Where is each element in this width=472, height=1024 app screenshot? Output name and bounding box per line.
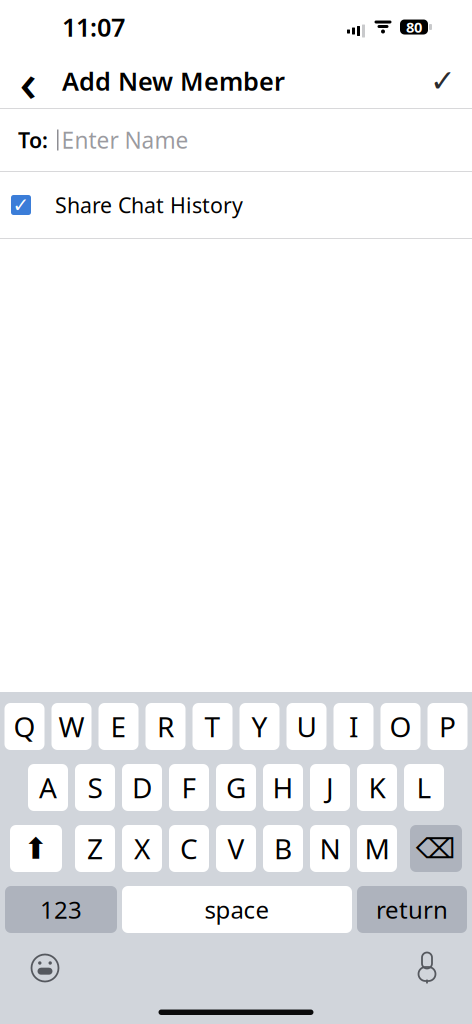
staticText: R: [157, 708, 174, 745]
staticText: N: [319, 830, 340, 867]
button[interactable]: D: [122, 764, 162, 811]
staticText: E: [110, 708, 126, 745]
button[interactable]: U: [286, 703, 326, 750]
button[interactable]: Done: [420, 56, 466, 106]
staticText: S: [87, 769, 102, 806]
staticText: ✓: [430, 64, 456, 98]
staticText: A: [39, 769, 57, 806]
button[interactable]: A: [28, 764, 68, 811]
staticText: 80: [406, 17, 422, 37]
button[interactable]: C: [169, 825, 209, 872]
button[interactable]: K: [357, 764, 397, 811]
button[interactable]: O: [380, 703, 420, 750]
staticText: Z: [87, 830, 103, 867]
staticText: ‹: [19, 46, 36, 116]
button[interactable]: Emoji: [22, 947, 68, 989]
button[interactable]: Y: [239, 703, 279, 750]
staticText: C: [180, 830, 198, 867]
button[interactable]: E: [98, 703, 138, 750]
staticText: 11:07: [62, 10, 125, 44]
staticText: F: [181, 769, 196, 806]
button[interactable]: Dictate: [404, 947, 450, 989]
button[interactable]: L: [404, 764, 444, 811]
staticText: I: [349, 708, 358, 745]
staticText: J: [326, 769, 334, 806]
button[interactable]: Shift: [10, 825, 62, 872]
button[interactable]: G: [216, 764, 256, 811]
staticText: ⌫: [416, 833, 456, 864]
staticText: ⬆: [23, 832, 48, 865]
staticText: Enter Name: [61, 125, 188, 155]
button[interactable]: Back: [8, 56, 48, 106]
staticText: P: [439, 708, 456, 745]
button[interactable]: V: [216, 825, 256, 872]
button[interactable]: N: [310, 825, 350, 872]
staticText: M: [364, 830, 389, 867]
staticText: Y: [251, 708, 267, 745]
staticText: O: [389, 708, 411, 745]
staticText: D: [132, 769, 152, 806]
staticText: B: [274, 830, 292, 867]
staticText: X: [134, 830, 150, 867]
staticText: Q: [13, 708, 35, 745]
button[interactable]: P: [427, 703, 467, 750]
button[interactable]: ✓: [0, 172, 472, 238]
button[interactable]: Q: [4, 703, 44, 750]
button[interactable]: H: [263, 764, 303, 811]
button[interactable]: I: [333, 703, 373, 750]
button[interactable]: Z: [75, 825, 115, 872]
staticText: T: [204, 708, 220, 745]
staticText: Add New Member: [62, 64, 285, 98]
staticText: Share Chat History: [55, 191, 243, 219]
staticText: ✓: [12, 194, 29, 216]
staticText: To:: [18, 126, 48, 154]
staticText: W: [58, 708, 84, 745]
button[interactable]: return: [357, 886, 467, 933]
staticText: 123: [40, 894, 82, 925]
staticText: L: [416, 769, 431, 806]
staticText: U: [296, 708, 316, 745]
button[interactable]: F: [169, 764, 209, 811]
button[interactable]: space: [122, 886, 352, 933]
button[interactable]: R: [145, 703, 185, 750]
staticText: space: [204, 894, 269, 925]
staticText: H: [272, 769, 293, 806]
button[interactable]: S: [75, 764, 115, 811]
button[interactable]: W: [51, 703, 91, 750]
staticText: G: [226, 769, 246, 806]
staticText: V: [227, 830, 244, 867]
button[interactable]: Delete: [410, 825, 462, 872]
button[interactable]: J: [310, 764, 350, 811]
button[interactable]: T: [192, 703, 232, 750]
staticText: K: [368, 769, 385, 806]
button[interactable]: X: [122, 825, 162, 872]
button[interactable]: M: [357, 825, 397, 872]
button[interactable]: B: [263, 825, 303, 872]
staticText: return: [376, 894, 448, 925]
button[interactable]: 123: [5, 886, 117, 933]
